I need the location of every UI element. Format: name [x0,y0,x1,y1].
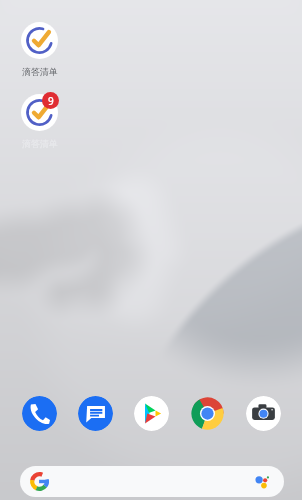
button[interactable]: Messages [78,396,113,431]
button[interactable]: Chrome [190,396,225,431]
button[interactable]: 滴答清单 [21,22,58,59]
staticText: 滴答清单 [22,66,58,77]
button[interactable]: Phone [22,396,57,431]
button[interactable]: Play Store [134,396,169,431]
staticText: 滴答清单 [22,138,58,149]
button[interactable]: Search [20,466,284,497]
button[interactable]: Camera [246,396,281,431]
staticText: 9 [48,94,54,108]
button[interactable]: 滴答清单 [21,94,58,131]
